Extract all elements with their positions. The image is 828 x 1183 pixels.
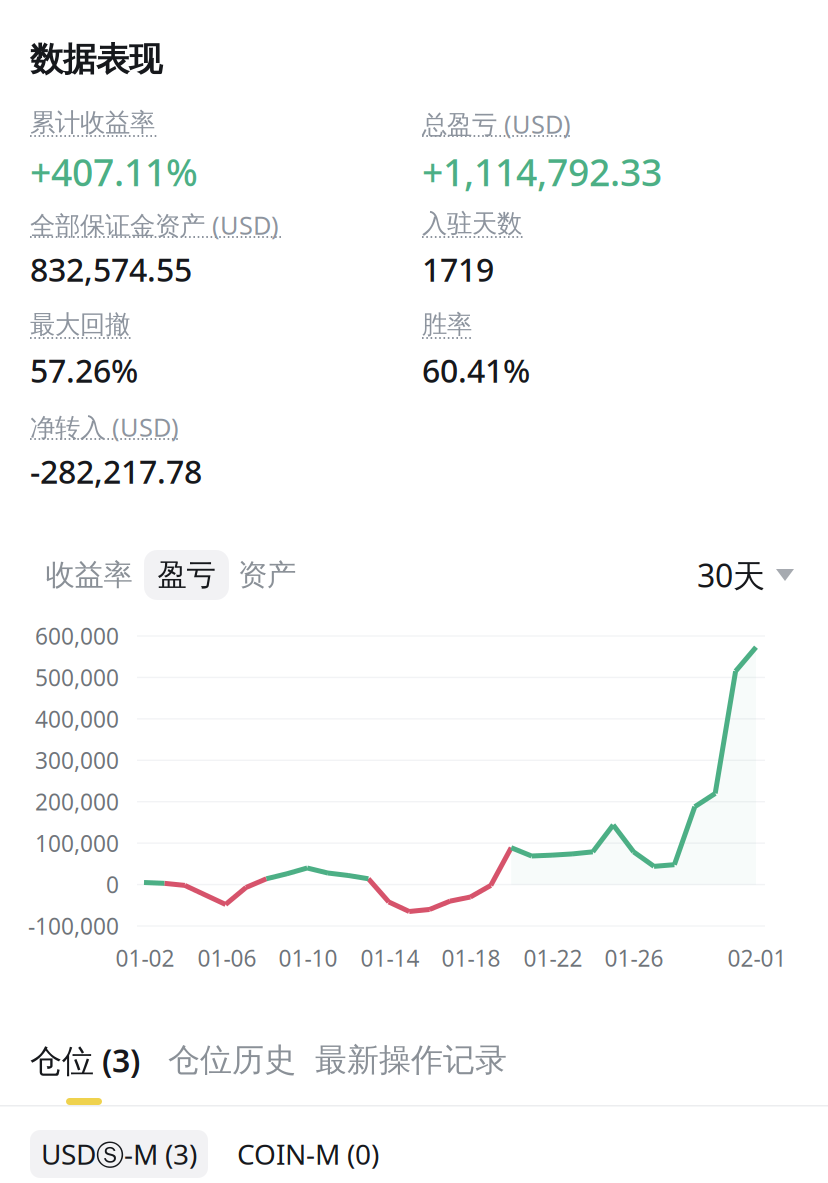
staticText: 仓位 (3) xyxy=(30,1039,140,1081)
staticText: 1719 xyxy=(422,248,494,290)
staticText: 胜率 xyxy=(422,309,472,340)
button[interactable]: 收益率 xyxy=(39,550,139,600)
staticText: 资产 xyxy=(238,557,296,593)
staticText: 01-22 xyxy=(523,943,582,973)
staticText: 01-14 xyxy=(360,943,419,973)
staticText: 01-10 xyxy=(278,943,337,973)
staticText: 收益率 xyxy=(45,557,132,593)
staticText: 57.26% xyxy=(30,349,138,391)
staticText: 01-18 xyxy=(441,943,500,973)
staticText: 最新操作记录 xyxy=(315,1040,507,1080)
staticText: -282,217.78 xyxy=(30,450,202,492)
button[interactable]: COIN-M (0) xyxy=(237,1130,397,1178)
staticText: 总盈亏 (USD) xyxy=(422,107,571,141)
staticText: -100,000 xyxy=(28,911,119,941)
staticText: 600,000 xyxy=(35,621,119,651)
staticText: 盈亏 xyxy=(157,557,215,593)
staticText: 0 xyxy=(106,869,119,900)
staticText: 01-26 xyxy=(604,943,663,973)
staticText: 最大回撤 xyxy=(30,309,130,340)
button[interactable]: 30天 xyxy=(697,550,794,600)
staticText: 01-02 xyxy=(115,943,174,973)
button[interactable]: 仓位历史 xyxy=(168,1036,296,1084)
staticText: 02-01 xyxy=(727,943,786,973)
staticText: 200,000 xyxy=(35,787,119,817)
staticText: +407.11% xyxy=(30,147,198,197)
staticText: 数据表现 xyxy=(30,39,162,80)
staticText: 60.41% xyxy=(422,349,530,391)
staticText: USDⓈ-M (3) xyxy=(41,1135,197,1173)
staticText: 全部保证金资产 (USD) xyxy=(30,208,279,242)
staticText: 仓位历史 xyxy=(168,1040,296,1080)
button[interactable]: 资产 xyxy=(229,550,305,600)
staticText: 累计收益率 xyxy=(30,107,155,138)
staticText: 入驻天数 xyxy=(422,208,522,239)
staticText: 500,000 xyxy=(35,662,119,692)
staticText: COIN-M (0) xyxy=(237,1135,379,1173)
staticText: 30天 xyxy=(697,554,765,596)
staticText: +1,114,792.33 xyxy=(422,147,662,197)
staticText: 832,574.55 xyxy=(30,248,192,290)
button[interactable]: USDⓈ-M (3) xyxy=(30,1130,208,1178)
staticText: 100,000 xyxy=(35,828,119,858)
staticText: 400,000 xyxy=(35,704,119,734)
staticText: 净转入 (USD) xyxy=(30,410,179,444)
button[interactable]: 仓位 (3) xyxy=(30,1036,140,1084)
button[interactable]: 盈亏 xyxy=(144,550,229,600)
button[interactable]: 最新操作记录 xyxy=(315,1036,507,1084)
staticText: 01-06 xyxy=(197,943,256,973)
staticText: 300,000 xyxy=(35,745,119,775)
